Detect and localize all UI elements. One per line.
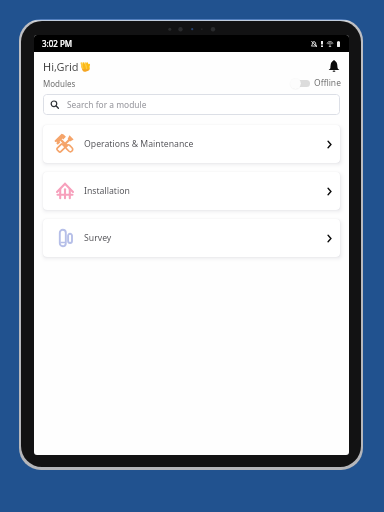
button[interactable]: Survey: [43, 219, 340, 257]
staticText: Operations & Maintenance: [84, 138, 194, 150]
staticText: Modules: [43, 78, 76, 89]
button[interactable]: Operations & Maintenance: [43, 125, 340, 163]
button[interactable]: Installation: [43, 172, 340, 210]
staticText: Survey: [84, 232, 112, 244]
button[interactable]: Search for a module: [43, 94, 340, 115]
staticText: Installation: [84, 185, 130, 197]
staticText: 3:02 PM: [42, 38, 73, 49]
staticText: Hi,Grid: [43, 59, 79, 74]
staticText: Search for a module: [67, 99, 147, 110]
button[interactable]: Notifications: [326, 58, 341, 73]
button[interactable]: [290, 78, 310, 89]
staticText: Offline: [314, 77, 341, 89]
